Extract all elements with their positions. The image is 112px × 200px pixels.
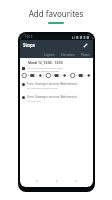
button[interactable]: From: Stavanger sentrum (Bakerinnsen) xyxy=(22,95,91,102)
button[interactable]: Lignes xyxy=(44,52,55,57)
staticText: 10:15 xyxy=(25,35,33,39)
staticText: Lignes xyxy=(44,52,55,57)
staticText: From: Stavanger sentrum (Bakerinnsen) xyxy=(27,82,78,86)
button[interactable]: Mardi 12, 13:00 - 13:30 xyxy=(22,61,91,65)
staticText: To: Sandnes parkrun (685) xyxy=(27,86,58,89)
staticText: From: Stavanger sentrum (Bakerinnsen) xyxy=(27,95,78,99)
staticText: Add favourites xyxy=(0,8,112,19)
button[interactable]: Navigation xyxy=(35,179,39,183)
button[interactable]: Navigation xyxy=(55,179,59,183)
staticText: Horaires xyxy=(61,52,75,57)
button[interactable]: Edit xyxy=(82,42,89,49)
staticText: Stops xyxy=(23,42,36,48)
button[interactable]: Plans xyxy=(81,52,90,57)
button[interactable]: Navigation xyxy=(74,179,78,183)
staticText: Mardi 12, 13:00 - 13:30 xyxy=(28,61,63,65)
staticText: To: Sandnes xyxy=(27,99,42,102)
staticText: 12 minutes depuis cet arret xyxy=(27,69,60,72)
button[interactable]: From: Stavanger sentrum (Bakerinnsen) xyxy=(22,82,91,89)
staticText: Votre prochain bus arrive dans xyxy=(27,66,63,69)
staticText: Plans xyxy=(81,52,90,57)
button[interactable]: Horaires xyxy=(61,52,75,57)
